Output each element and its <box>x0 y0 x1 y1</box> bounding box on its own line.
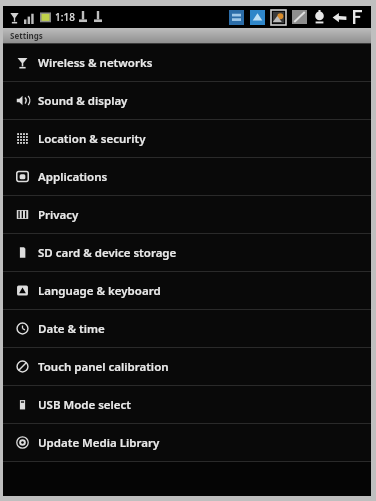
staticText: Wireless & networks <box>38 55 153 71</box>
staticText: SD card & device storage <box>38 245 177 261</box>
button[interactable]: Applications <box>3 158 371 195</box>
button[interactable]: Update Media Library <box>3 424 371 461</box>
staticText: Location & security <box>38 131 146 147</box>
staticText: Settings <box>10 30 43 41</box>
button[interactable]: SD card & device storage <box>3 234 371 271</box>
button[interactable]: Touch panel calibration <box>3 348 371 385</box>
button[interactable]: Wireless & networks <box>3 44 371 81</box>
staticText: USB Mode select <box>38 397 131 413</box>
staticText: Language & keyboard <box>38 283 161 299</box>
staticText: Applications <box>38 169 108 185</box>
button[interactable]: Language & keyboard <box>3 272 371 309</box>
staticText: Touch panel calibration <box>38 359 169 375</box>
button[interactable]: Sound & display <box>3 82 371 119</box>
button[interactable]: USB Mode select <box>3 386 371 423</box>
staticText: Date & time <box>38 321 105 337</box>
button[interactable]: Privacy <box>3 196 371 233</box>
button[interactable]: Location & security <box>3 120 371 157</box>
button[interactable]: Date & time <box>3 310 371 347</box>
staticText: Sound & display <box>38 93 128 109</box>
staticText: Privacy <box>38 207 79 223</box>
staticText: 1:18 <box>55 10 75 24</box>
staticText: Update Media Library <box>38 435 160 451</box>
